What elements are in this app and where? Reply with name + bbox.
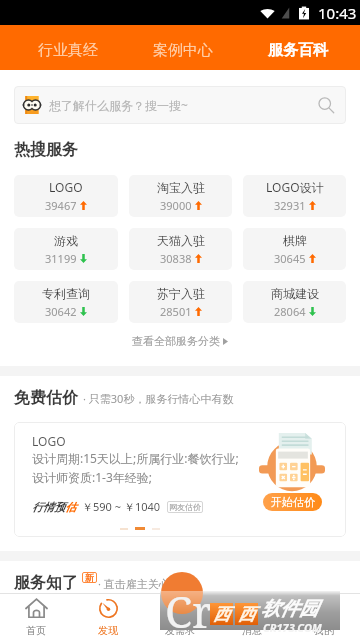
- staticText: 30838: [160, 251, 192, 266]
- button[interactable]: 我的: [288, 594, 360, 640]
- button[interactable]: 消息: [216, 594, 288, 640]
- staticText: 行情预: [32, 500, 65, 514]
- staticText: 消息: [242, 624, 262, 637]
- staticText: 专利查询: [42, 286, 90, 301]
- staticText: 网友估价: [169, 502, 201, 512]
- staticText: 我的: [314, 624, 334, 637]
- button[interactable]: 发现: [72, 594, 144, 640]
- staticText: 服务知了: [14, 573, 78, 593]
- button[interactable]: 服务百科: [240, 25, 355, 70]
- staticText: 开始估价: [271, 495, 315, 509]
- button[interactable]: 开始估价: [263, 493, 322, 511]
- staticText: · 只需30秒，服务行情心中有数: [83, 391, 234, 406]
- button[interactable]: 棋牌: [243, 228, 346, 270]
- staticText: 游戏: [54, 233, 78, 248]
- staticText: 服务百科: [268, 41, 328, 60]
- staticText: CR173.COM: [263, 620, 322, 635]
- staticText: 热搜服务: [14, 140, 78, 160]
- staticText: Cr: [165, 581, 213, 640]
- staticText: 设计师资质:1-3年经验;: [32, 469, 153, 485]
- staticText: 31199: [45, 251, 77, 266]
- button[interactable]: 案例中心: [125, 25, 240, 70]
- button[interactable]: 首页: [0, 594, 72, 640]
- staticText: 估: [65, 500, 76, 514]
- staticText: 想了解什么服务？搜一搜~: [49, 97, 188, 113]
- button[interactable]: LOGO设计: [243, 175, 346, 217]
- button[interactable]: 发需求: [144, 594, 216, 640]
- staticText: 淘宝入驻: [157, 180, 205, 195]
- other: Search: [317, 96, 335, 114]
- staticText: 首页: [26, 624, 46, 637]
- button[interactable]: 行业真经: [10, 25, 125, 70]
- button[interactable]: 商城建设: [243, 281, 346, 323]
- button[interactable]: 苏宁入驻: [129, 281, 232, 323]
- staticText: 39000: [160, 198, 192, 213]
- staticText: 免费估价: [14, 388, 78, 408]
- button[interactable]: 想了解什么服务？搜一搜~: [14, 86, 346, 124]
- staticText: 软件园: [261, 597, 318, 621]
- staticText: 发现: [98, 624, 118, 637]
- staticText: 行业真经: [38, 41, 98, 60]
- staticText: 28501: [160, 304, 192, 319]
- staticText: · 直击雇主关心...: [98, 576, 179, 591]
- staticText: 苏宁入驻: [157, 286, 205, 301]
- button[interactable]: LOGO: [14, 175, 118, 217]
- button[interactable]: 专利查询: [14, 281, 118, 323]
- button[interactable]: 淘宝入驻: [129, 175, 232, 217]
- staticText: ￥590 ~ ￥1040: [82, 499, 161, 514]
- staticText: 10:43: [318, 3, 357, 23]
- staticText: 30642: [45, 304, 77, 319]
- staticText: 发需求: [165, 624, 195, 637]
- staticText: 棋牌: [283, 233, 307, 248]
- staticText: 39467: [45, 198, 77, 213]
- staticText: 30645: [274, 251, 306, 266]
- staticText: 西: [238, 604, 255, 625]
- staticText: 32931: [274, 198, 306, 213]
- staticText: 商城建设: [271, 286, 319, 301]
- staticText: LOGO: [32, 433, 66, 449]
- staticText: 案例中心: [153, 41, 213, 60]
- staticText: 天猫入驻: [157, 233, 205, 248]
- staticText: 28064: [274, 304, 306, 319]
- button[interactable]: 天猫入驻: [129, 228, 232, 270]
- staticText: LOGO: [49, 179, 83, 195]
- button[interactable]: 查看全部服务分类: [14, 334, 346, 348]
- staticText: LOGO设计: [266, 179, 324, 195]
- staticText: 设计周期:15天以上;所属行业:餐饮行业;: [32, 450, 239, 466]
- staticText: 西: [213, 604, 230, 625]
- button[interactable]: 游戏: [14, 228, 118, 270]
- staticText: 新: [85, 572, 94, 583]
- button[interactable]: LOGO: [14, 422, 346, 537]
- staticText: 查看全部服务分类: [132, 334, 220, 348]
